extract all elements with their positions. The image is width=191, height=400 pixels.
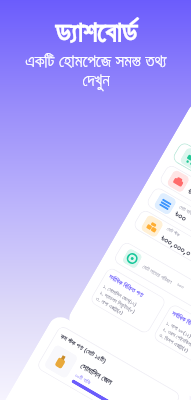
staticText: ৳০০,০০০,০ xyxy=(159,231,191,258)
staticText: সোমাসিন জেল xyxy=(78,360,115,387)
staticText: ০০টি বাকি xyxy=(74,371,93,386)
staticText: একটি হোমপেজে সমস্ত তথ্য দেখুন xyxy=(25,49,167,89)
staticText: ৳০০ xyxy=(173,210,188,224)
staticText: কম স্টক পণ্য (মোট ১৫টি) xyxy=(59,332,108,366)
staticText: সর্বাধিক বিক্রিত পণ্য xyxy=(170,309,191,336)
button[interactable]: মোট বাকি xyxy=(145,186,191,275)
button[interactable]: সর্বাধিক বিক্রিত পণ্য xyxy=(89,266,167,335)
button[interactable]: মোট স্টক xyxy=(132,208,191,297)
staticText: মোট বাকি xyxy=(178,204,191,217)
button[interactable]: আজকের বিক্রয় xyxy=(171,141,191,230)
button[interactable]: মোট লাভের পরিমাণ xyxy=(112,240,191,331)
staticText: ২. ওরস পেইনকিলার(৮) xyxy=(162,325,191,352)
staticText: ৳০০ xyxy=(176,282,186,291)
staticText: ১. নাপা ৯৮(১২) xyxy=(165,319,191,339)
staticText: মোট স্টক xyxy=(165,225,182,239)
staticText: ৩. নাপা এক্সট্রা(৫) xyxy=(95,294,125,316)
staticText: সর্বাধিক বিক্রিত পণ্য xyxy=(107,272,145,299)
staticText: ১. সোমাসিন জেল(১২) xyxy=(102,282,138,307)
button[interactable]: আজকের খরচ xyxy=(158,163,191,252)
staticText: ৳০০ xyxy=(186,187,191,201)
button[interactable]: কম স্টক পণ্য (মোট ১৫টি) xyxy=(35,324,182,400)
staticText: ২. স্যাভলন লিকুইড(৮) xyxy=(99,288,137,315)
staticText: ৩. ডিসপ এক্সট্রা(৫) xyxy=(158,331,190,354)
staticText: মোট লাভের পরিমাণ xyxy=(141,262,174,285)
staticText: ড্যাশবোর্ড xyxy=(55,20,137,48)
button[interactable]: সর্বাধিক বিক্রিত পণ্য xyxy=(152,303,191,372)
